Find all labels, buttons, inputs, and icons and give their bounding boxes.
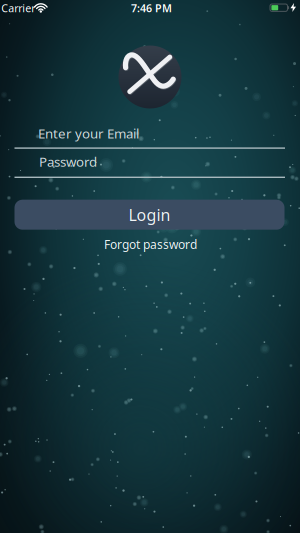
- button[interactable]: Login: [14, 200, 284, 230]
- staticText: Login: [128, 204, 170, 225]
- button[interactable]: Password: [14, 149, 285, 178]
- staticText: Enter your Email: [38, 124, 139, 142]
- staticText: Password: [39, 153, 97, 170]
- staticText: 7:46 PM: [131, 1, 172, 15]
- staticText: Carrier: [1, 1, 35, 15]
- staticText: Forgot password: [104, 236, 197, 252]
- button[interactable]: Enter your Email: [14, 120, 285, 149]
- button[interactable]: Forgot password: [100, 232, 201, 256]
